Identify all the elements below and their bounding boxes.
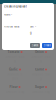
staticText: Garlic <box>9 68 18 71</box>
button[interactable]: Tomato <box>2 48 28 65</box>
button[interactable]: Flour <box>2 83 28 100</box>
button[interactable]: Onion <box>28 48 54 65</box>
staticText: g <box>30 31 32 34</box>
button[interactable]: Carrot <box>28 65 54 82</box>
button[interactable]: Create <box>42 43 52 48</box>
button[interactable]: Garlic <box>2 65 28 82</box>
staticText: Create <box>43 44 50 47</box>
staticText: Amount value <box>4 25 19 28</box>
staticText: unit * <box>30 25 36 28</box>
staticText: Cancel <box>31 44 38 47</box>
button[interactable]: Sugar <box>28 83 54 100</box>
staticText: Flour <box>9 85 17 89</box>
staticText: Sugar <box>35 85 44 89</box>
staticText: Carrot <box>35 68 44 71</box>
staticText: Onion <box>35 50 44 54</box>
staticText: Create Ingredient <box>4 5 27 8</box>
staticText: Name * <box>4 13 12 16</box>
staticText: Tomato <box>7 50 19 54</box>
button[interactable]: Cancel <box>30 43 40 48</box>
